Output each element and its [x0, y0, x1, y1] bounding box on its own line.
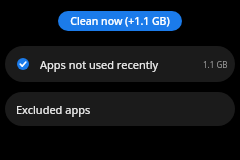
staticText: Apps not used recently	[40, 57, 203, 72]
other: Selected	[17, 58, 29, 70]
button[interactable]: Selected	[5, 46, 235, 82]
staticText: 1.1 GB	[203, 59, 228, 70]
button[interactable]: Clean now (+1.1 GB)	[58, 11, 182, 31]
staticText: Excluded apps	[16, 102, 91, 117]
staticText: Clean now (+1.1 GB)	[70, 14, 170, 28]
button[interactable]: Excluded apps	[5, 92, 235, 126]
